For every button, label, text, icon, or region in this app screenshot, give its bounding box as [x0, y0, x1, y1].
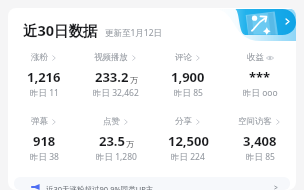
button[interactable]: 空间访客: [224, 116, 296, 163]
button[interactable]: 评论: [152, 52, 224, 99]
staticText: 昨日 ooo: [243, 87, 278, 99]
button[interactable]: 涨粉: [8, 52, 80, 99]
button[interactable]: 弹幕: [8, 116, 80, 163]
staticText: 昨日 85: [246, 151, 275, 163]
staticText: 昨日 38: [30, 151, 59, 163]
button[interactable]: 收益推广: [212, 8, 296, 41]
staticText: 空间访客: [238, 116, 272, 127]
staticText: 1,900: [171, 68, 205, 86]
staticText: 昨日 32,462: [93, 87, 139, 99]
staticText: 弹幕: [31, 116, 48, 127]
staticText: 1,216: [27, 68, 61, 86]
staticText: 万: [126, 139, 134, 149]
staticText: 12,500: [168, 132, 209, 150]
staticText: 涨粉: [31, 52, 48, 63]
staticText: ***: [249, 68, 271, 86]
button[interactable]: 分享: [152, 116, 224, 163]
staticText: 昨日 85: [174, 87, 203, 99]
staticText: 更新至1月12日: [105, 27, 163, 39]
staticText: 23.5: [99, 132, 125, 150]
staticText: 点赞: [103, 116, 120, 127]
staticText: 918: [33, 132, 56, 150]
button[interactable]: 点赞: [80, 116, 152, 163]
staticText: 近30天涨粉超过90.9%同类UP主: [46, 184, 154, 190]
button[interactable]: 收益: [224, 52, 296, 99]
staticText: 万: [130, 75, 138, 85]
staticText: 233.2: [95, 68, 129, 86]
button[interactable]: 视频播放: [80, 52, 152, 99]
staticText: 收益: [247, 52, 264, 63]
staticText: 视频播放: [94, 52, 128, 63]
button[interactable]: 近30天涨粉超过90.9%同类UP主: [14, 177, 290, 190]
staticText: 昨日 224: [171, 151, 205, 163]
staticText: 昨日 1,280: [96, 151, 137, 163]
staticText: 昨日 11: [30, 87, 59, 99]
staticText: 近30日数据: [23, 20, 98, 40]
staticText: 分享: [175, 116, 192, 127]
staticText: 3,408: [243, 132, 277, 150]
staticText: 评论: [175, 52, 192, 63]
